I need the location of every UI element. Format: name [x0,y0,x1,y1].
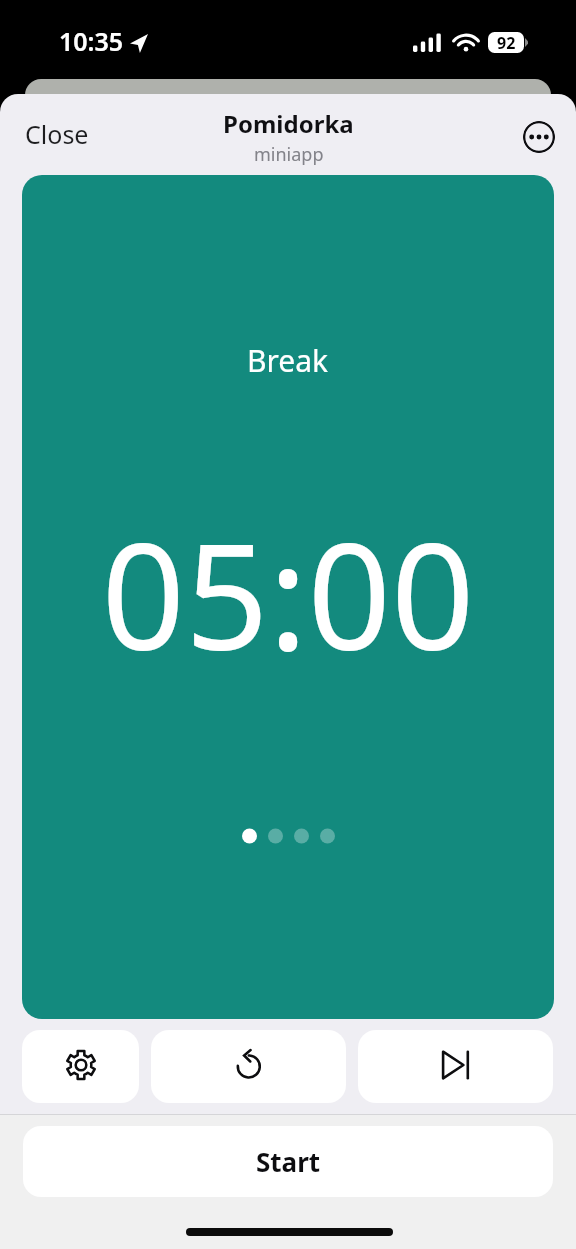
staticText: Pomidorka [223,107,354,140]
button[interactable]: Start [23,1126,553,1197]
staticText: Start [256,1144,321,1179]
staticText: Close [25,117,89,151]
button[interactable]: Close [10,109,104,159]
staticText: 10:35 [59,24,124,58]
staticText: 92 [497,32,516,53]
button[interactable]: Settings [22,1030,139,1103]
button[interactable]: More options [523,121,555,153]
button[interactable]: Skip [358,1030,553,1103]
button[interactable]: Break [22,175,554,1019]
staticText: Break [247,340,329,381]
staticText: miniapp [254,142,324,167]
staticText: 05:00 [101,494,475,693]
button[interactable]: Restart [151,1030,346,1103]
